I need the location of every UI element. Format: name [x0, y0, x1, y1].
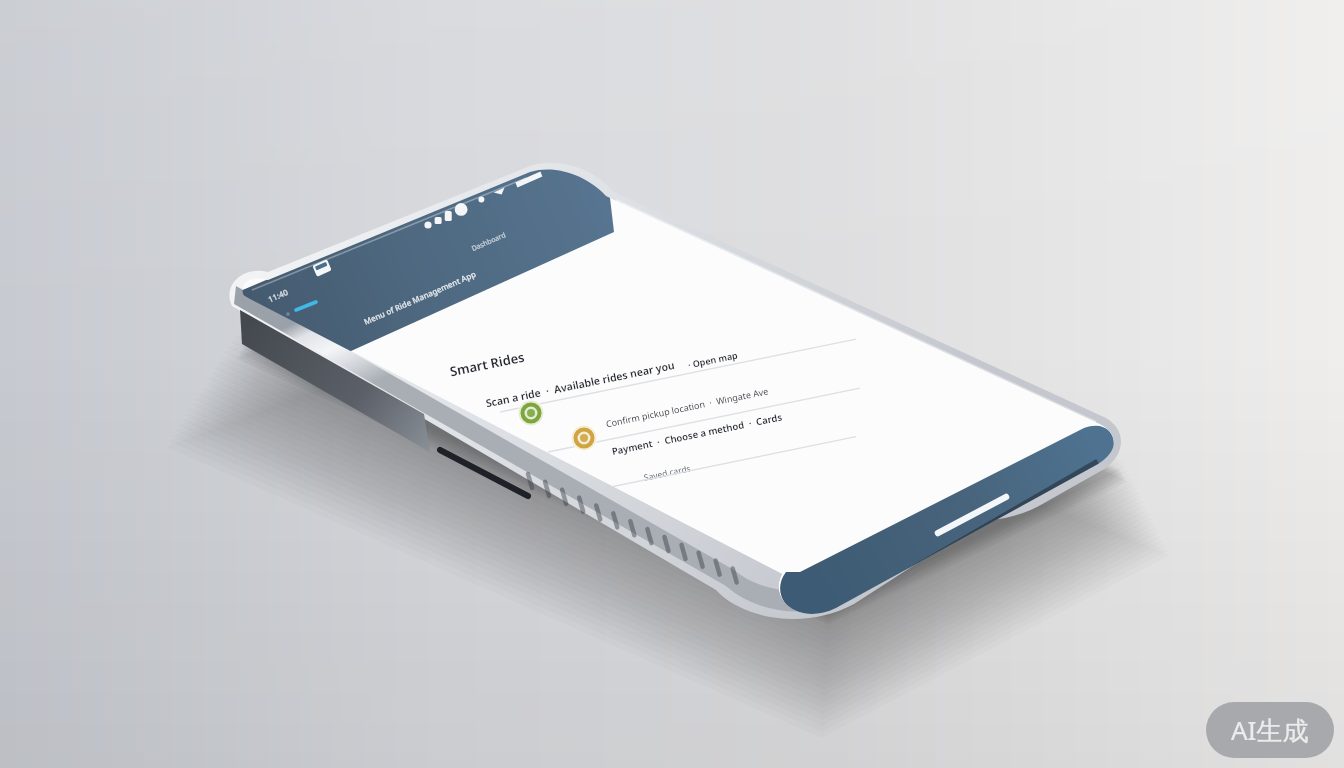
- button[interactable]: Smart Rides phone app screen: [0, 0, 1344, 768]
